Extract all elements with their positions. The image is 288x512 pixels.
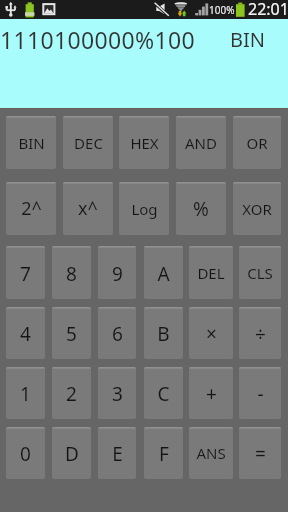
- button[interactable]: 3: [98, 367, 136, 419]
- button[interactable]: AND: [176, 116, 226, 169]
- staticText: Log: [131, 199, 158, 219]
- staticText: =: [255, 441, 266, 467]
- button[interactable]: D: [52, 427, 91, 479]
- button[interactable]: 5: [52, 307, 91, 359]
- staticText: 6: [112, 321, 123, 347]
- button[interactable]: DEL: [189, 246, 233, 299]
- button[interactable]: HEX: [119, 116, 169, 169]
- staticText: %: [193, 196, 209, 222]
- staticText: DEL: [197, 263, 225, 283]
- button[interactable]: x^: [63, 182, 113, 235]
- button[interactable]: 8: [52, 246, 91, 299]
- staticText: E: [112, 441, 123, 467]
- button[interactable]: =: [239, 427, 281, 479]
- staticText: 1: [20, 381, 31, 407]
- button[interactable]: 7: [6, 246, 45, 299]
- staticText: B: [157, 321, 170, 347]
- button[interactable]: ×: [189, 307, 233, 359]
- staticText: 22:01: [248, 0, 288, 17]
- staticText: ANS: [196, 443, 226, 463]
- button[interactable]: XOR: [233, 182, 281, 235]
- staticText: AND: [185, 133, 217, 153]
- button[interactable]: 6: [98, 307, 136, 359]
- staticText: D: [65, 441, 79, 467]
- button[interactable]: DEC: [63, 116, 113, 169]
- staticText: 8: [66, 261, 77, 287]
- button[interactable]: B: [144, 307, 183, 359]
- staticText: 9: [112, 261, 123, 287]
- button[interactable]: %: [176, 182, 226, 235]
- button[interactable]: BIN: [6, 116, 56, 169]
- staticText: DEC: [74, 133, 103, 153]
- staticText: BIN: [230, 26, 265, 53]
- button[interactable]: 0: [6, 427, 45, 479]
- staticText: BIN: [18, 133, 45, 153]
- button[interactable]: 1: [6, 367, 45, 419]
- button[interactable]: CLS: [239, 246, 281, 299]
- staticText: A: [157, 261, 170, 287]
- staticText: 1110100000%100: [0, 24, 196, 55]
- button[interactable]: ANS: [189, 427, 233, 479]
- staticText: 3: [112, 381, 123, 407]
- staticText: ×: [206, 321, 217, 347]
- staticText: -: [257, 381, 264, 407]
- staticText: XOR: [242, 199, 272, 219]
- button[interactable]: 2: [52, 367, 91, 419]
- button[interactable]: Log: [119, 182, 169, 235]
- staticText: 5: [66, 321, 77, 347]
- button[interactable]: +: [189, 367, 233, 419]
- staticText: CLS: [247, 263, 273, 283]
- button[interactable]: E: [98, 427, 136, 479]
- staticText: HEX: [130, 133, 159, 153]
- staticText: 100%: [209, 3, 235, 17]
- staticText: C: [157, 381, 170, 407]
- staticText: x^: [78, 196, 98, 221]
- button[interactable]: 4: [6, 307, 45, 359]
- button[interactable]: 2^: [6, 182, 56, 235]
- button[interactable]: OR: [233, 116, 281, 169]
- button[interactable]: C: [144, 367, 183, 419]
- staticText: 2^: [21, 196, 42, 221]
- button[interactable]: 9: [98, 246, 136, 299]
- staticText: 7: [20, 261, 31, 287]
- button[interactable]: F: [144, 427, 183, 479]
- staticText: 2: [66, 381, 77, 407]
- button[interactable]: ÷: [239, 307, 281, 359]
- staticText: ÷: [255, 321, 266, 347]
- staticText: F: [159, 441, 169, 467]
- staticText: +: [206, 381, 217, 407]
- staticText: 0: [20, 441, 31, 467]
- staticText: 4: [20, 321, 31, 347]
- staticText: OR: [246, 133, 268, 153]
- button[interactable]: -: [239, 367, 281, 419]
- button[interactable]: A: [144, 246, 183, 299]
